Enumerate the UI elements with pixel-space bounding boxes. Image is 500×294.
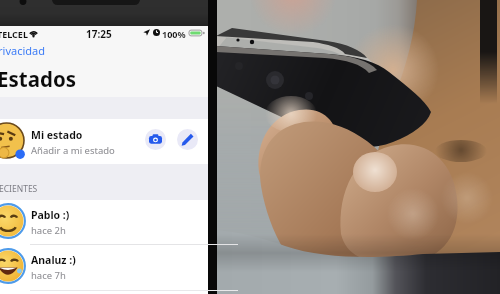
button[interactable]: Mi estado bbox=[0, 119, 208, 164]
staticText: hace 2h bbox=[31, 224, 66, 237]
staticText: rivacidad bbox=[0, 43, 45, 58]
staticText: 17:25 bbox=[86, 27, 112, 40]
button[interactable]: Pablo :) bbox=[0, 200, 208, 245]
staticText: Analuz :) bbox=[31, 253, 76, 267]
button[interactable]: Camera bbox=[145, 129, 166, 150]
staticText: hace 7h bbox=[31, 269, 66, 282]
staticText: Pablo :) bbox=[31, 208, 70, 222]
staticText: ECIENTES bbox=[0, 183, 38, 195]
staticText: 100% bbox=[162, 28, 186, 40]
staticText: Mi estado bbox=[31, 128, 83, 142]
staticText: Estados bbox=[0, 65, 77, 93]
button[interactable]: Edit status bbox=[177, 129, 198, 150]
staticText: TELCEL bbox=[0, 28, 28, 40]
button[interactable]: Analuz :) bbox=[0, 245, 208, 290]
staticText: Añadir a mi estado bbox=[31, 144, 115, 157]
